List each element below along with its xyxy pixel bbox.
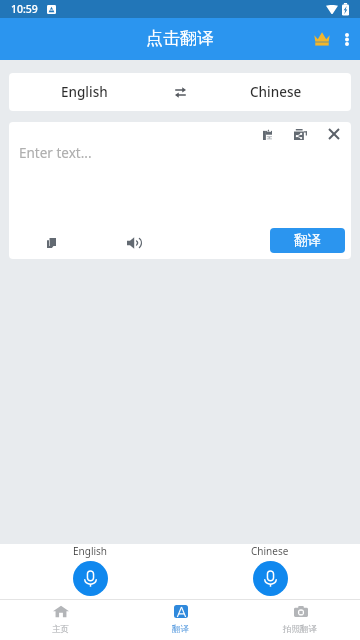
button[interactable]: Premium [310,18,333,60]
staticText: 10:59 [11,2,38,16]
button[interactable]: Speak Chinese [253,561,288,596]
button[interactable]: Paste [251,122,284,146]
button[interactable]: Swap languages [159,73,201,111]
button[interactable]: Speak English [73,561,108,596]
button[interactable]: 拍照翻译 [240,600,360,640]
button[interactable]: English [0,544,180,599]
staticText: Enter text... [19,144,92,162]
staticText: 翻译 [294,232,321,249]
button[interactable]: 翻译 [270,228,345,253]
button[interactable]: Chinese [180,544,360,599]
button[interactable]: 主页 [0,600,120,640]
staticText: 拍照翻译 [283,624,317,635]
staticText: 主页 [52,624,69,635]
button[interactable]: Chinese [201,73,351,111]
staticText: 点击翻译 [146,28,214,49]
staticText: English [61,83,108,101]
button[interactable]: English [9,73,159,111]
staticText: 翻译 [172,624,189,635]
button[interactable]: Speak [120,229,148,257]
button[interactable]: Clear [317,122,350,146]
staticText: English [73,544,108,558]
button[interactable]: More options [333,18,360,60]
staticText: Chinese [250,83,302,101]
button[interactable]: 翻译 [120,600,240,640]
button[interactable]: Share [284,122,317,146]
button[interactable]: Copy [37,229,65,257]
staticText: Chinese [251,544,289,558]
